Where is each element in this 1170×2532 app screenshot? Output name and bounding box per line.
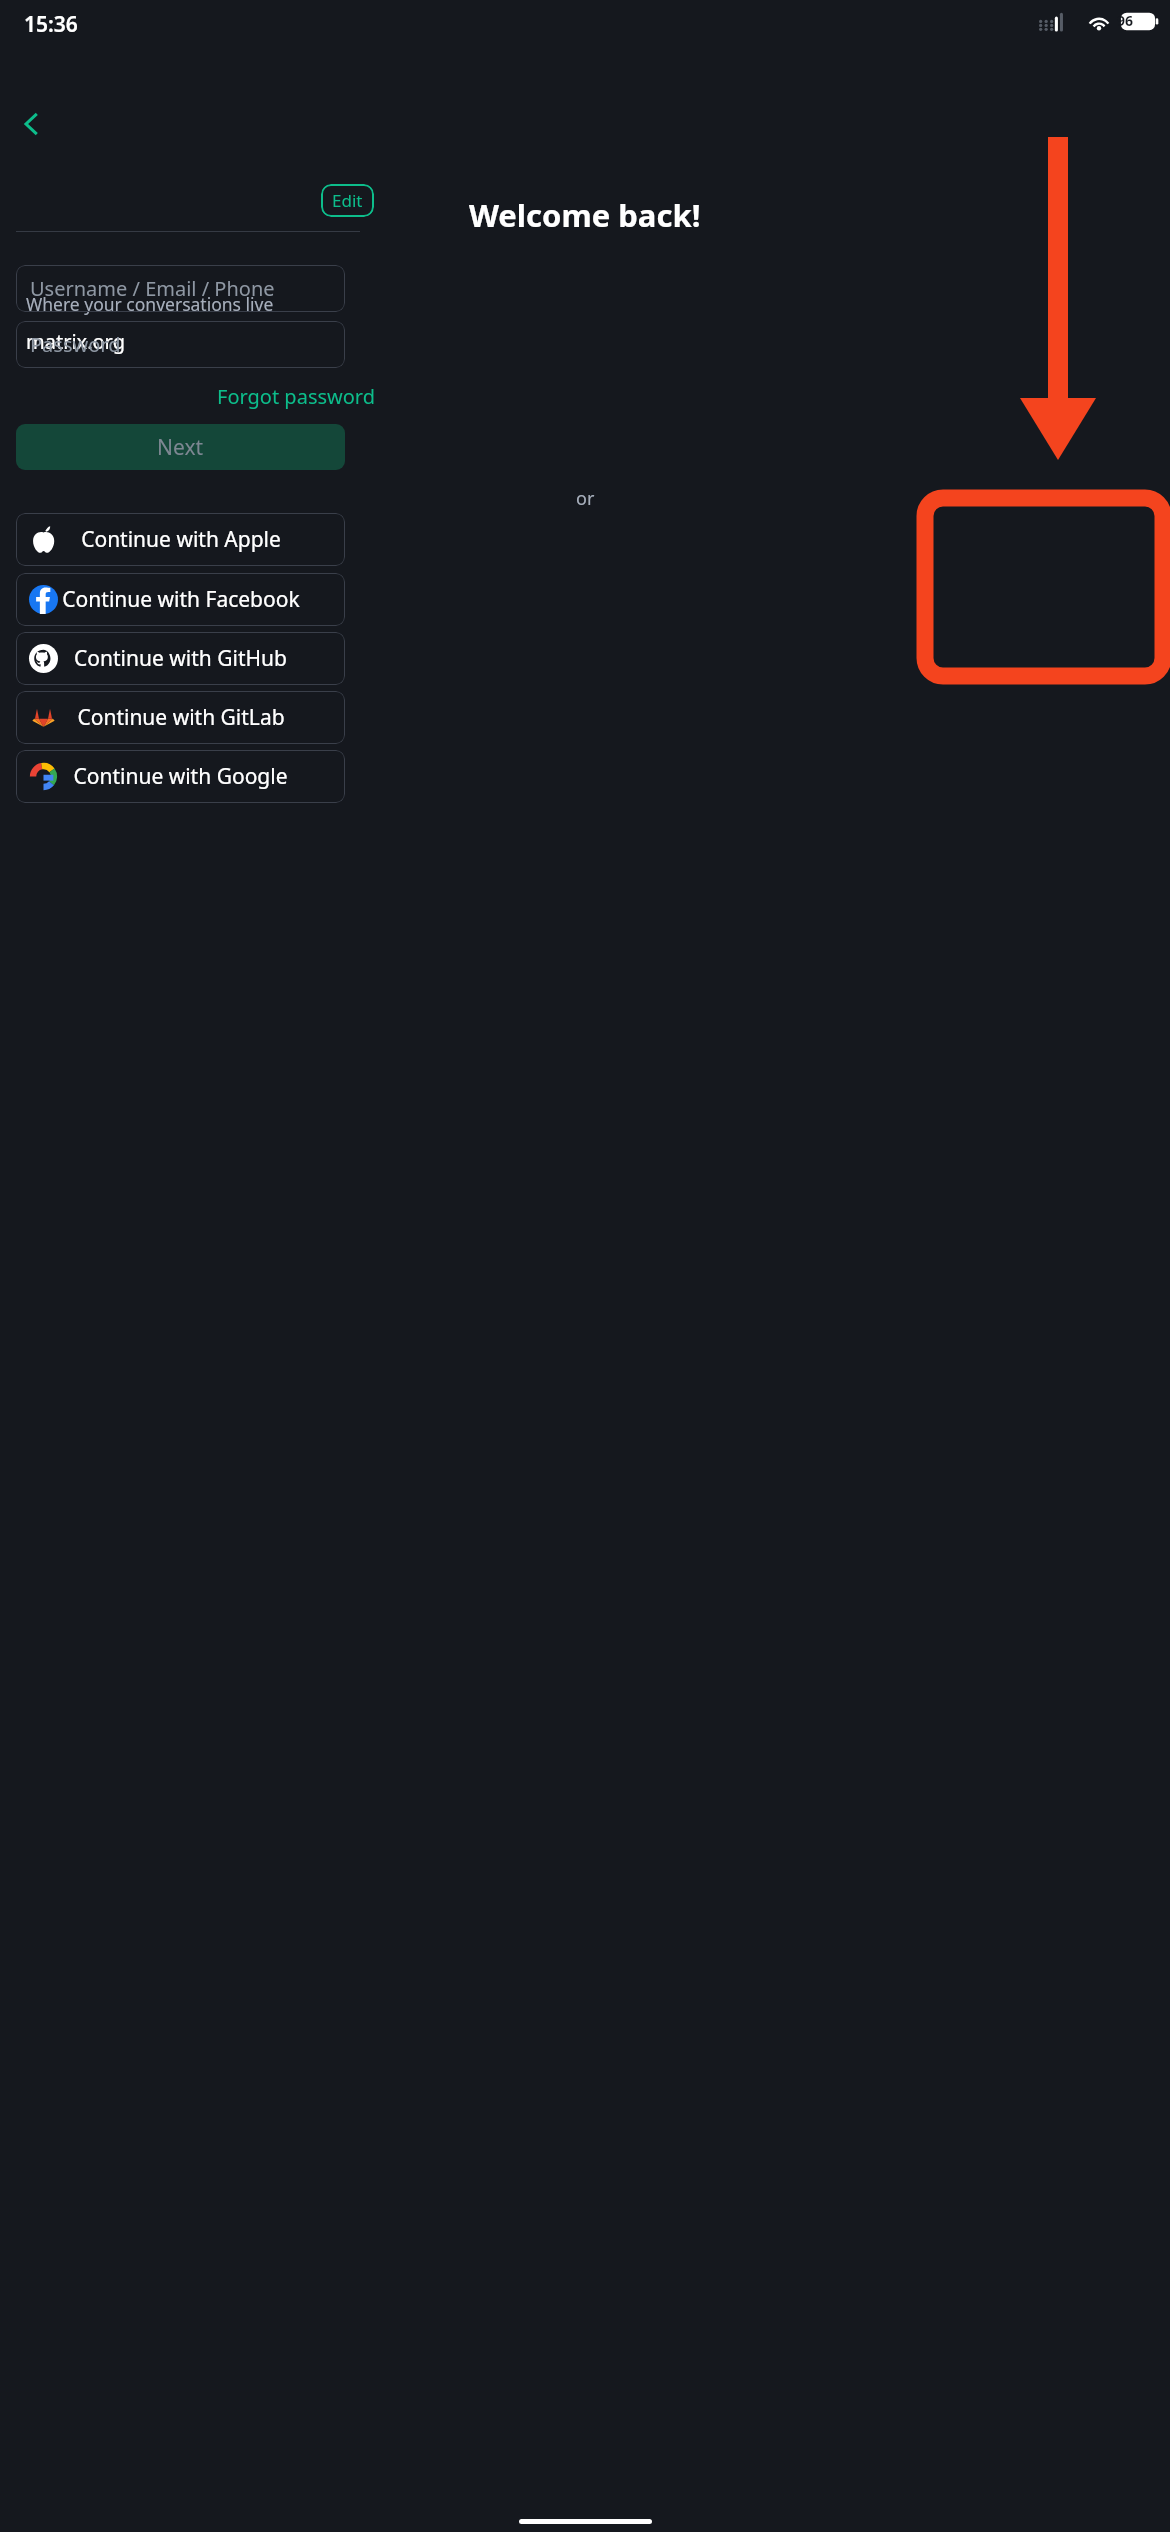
staticText: Continue with Facebook — [62, 585, 300, 614]
staticText: Password — [30, 331, 121, 358]
staticText: Where your conversations live — [26, 292, 274, 316]
button[interactable]: Next — [16, 424, 345, 470]
button[interactable]: Password — [16, 321, 345, 368]
staticText: Continue with GitLab — [77, 703, 285, 732]
button[interactable]: Continue with Apple — [16, 513, 345, 566]
button[interactable]: Continue with Google — [16, 750, 345, 803]
button[interactable]: Continue with GitHub — [16, 632, 345, 685]
staticText: 96 — [1117, 11, 1134, 30]
staticText: Next — [157, 433, 204, 462]
staticText: Edit — [332, 189, 363, 212]
staticText: Welcome back! — [469, 194, 701, 236]
button[interactable]: Back — [4, 96, 60, 152]
staticText: Continue with Apple — [81, 525, 281, 554]
staticText: Continue with GitHub — [74, 644, 287, 673]
button[interactable]: Continue with GitLab — [16, 691, 345, 744]
staticText: or — [576, 486, 595, 511]
button[interactable]: Username / Email / Phone — [16, 265, 345, 312]
button[interactable]: Edit — [321, 184, 374, 217]
button[interactable]: Continue with Facebook — [16, 573, 345, 626]
staticText: Username / Email / Phone — [30, 275, 275, 302]
staticText: 15:36 — [24, 10, 78, 39]
button[interactable]: Forgot password — [217, 383, 376, 410]
staticText: Continue with Google — [73, 762, 288, 791]
staticText: matrix.org — [26, 328, 125, 355]
staticText: Forgot password — [217, 383, 376, 410]
